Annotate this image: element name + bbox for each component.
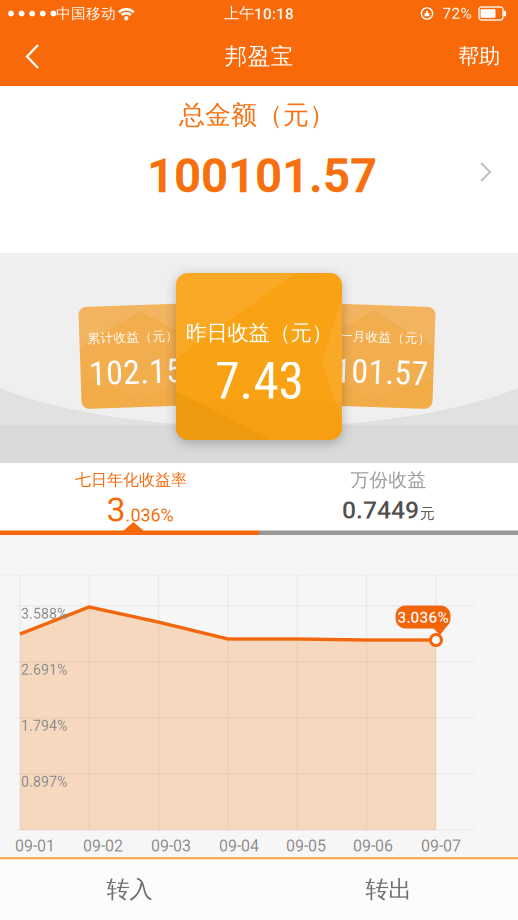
staticText: 邦盈宝 <box>224 42 293 71</box>
staticText: 0.897% <box>21 774 67 790</box>
button[interactable]: 转出 <box>259 859 518 919</box>
staticText: 一月收益（元） <box>339 329 430 345</box>
staticText: 累计收益（元） <box>88 329 179 345</box>
staticText: 帮助 <box>458 43 500 70</box>
staticText: 0.7449 <box>342 495 419 524</box>
staticText: 转入 <box>106 875 152 904</box>
button[interactable]: 100101.57 <box>31 127 491 217</box>
staticText: 2.691% <box>21 662 67 678</box>
staticText: 7.43 <box>214 351 303 411</box>
staticText: 中国移动 <box>56 4 116 23</box>
staticText: 4101.57 <box>318 352 429 392</box>
staticText: 上午10:18 <box>224 4 294 23</box>
staticText: 100101.57 <box>147 148 377 204</box>
staticText: 七日年化收益率 <box>75 470 187 490</box>
staticText: 09-04 <box>219 837 259 855</box>
staticText: 万份收益 <box>350 468 426 492</box>
button[interactable]: 万份收益 <box>259 463 518 530</box>
staticText: 09-01 <box>15 837 55 855</box>
staticText: 3.588% <box>21 606 67 622</box>
staticText: 09-07 <box>421 837 461 855</box>
button[interactable]: 七日年化收益率 <box>0 463 259 530</box>
staticText: .036% <box>125 505 173 526</box>
staticText: 转出 <box>365 875 411 904</box>
staticText: 昨日收益（元） <box>185 320 332 346</box>
staticText: 102.157 <box>88 352 199 392</box>
button[interactable]: 转入 <box>0 859 259 919</box>
button[interactable]: 帮助 <box>448 34 510 79</box>
staticText: 09-05 <box>286 837 326 855</box>
staticText: 09-02 <box>83 837 123 855</box>
staticText: 总金额（元） <box>179 99 335 131</box>
staticText: 元 <box>420 504 435 523</box>
staticText: 1.794% <box>21 718 67 734</box>
staticText: 3.036% <box>397 608 448 626</box>
staticText: 3 <box>106 490 125 530</box>
staticText: 09-03 <box>151 837 191 855</box>
staticText: 09-06 <box>353 837 393 855</box>
button[interactable] <box>8 34 52 79</box>
staticText: 72% <box>442 4 471 22</box>
